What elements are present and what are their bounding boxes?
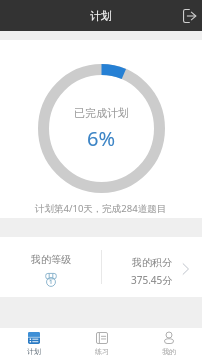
staticText: 计划 bbox=[27, 347, 41, 356]
staticText: 我的积分 bbox=[132, 256, 172, 269]
button[interactable]: 我的积分 bbox=[101, 237, 202, 297]
staticText: 375.45分 bbox=[131, 273, 173, 287]
staticText: 练习 bbox=[95, 347, 109, 356]
staticText: 计划第4/10天，完成284道题目 bbox=[35, 202, 167, 215]
button[interactable]: 我的 bbox=[135, 328, 202, 359]
staticText: 我的 bbox=[162, 347, 176, 356]
staticText: 6% bbox=[87, 125, 116, 152]
staticText: 我的等级 bbox=[31, 253, 71, 266]
button[interactable]: 计划 bbox=[0, 328, 68, 359]
staticText: 已完成计划 bbox=[74, 106, 129, 120]
button[interactable]: 我的等级 bbox=[0, 237, 101, 297]
button[interactable]: 练习 bbox=[68, 328, 135, 359]
staticText: 计划 bbox=[90, 9, 112, 23]
button[interactable]: Log out bbox=[171, 0, 202, 31]
